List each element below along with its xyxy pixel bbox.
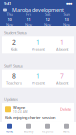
staticText: Kids (10, 47, 17, 52)
staticText: 1 (60, 38, 64, 47)
staticText: Nov (63, 22, 70, 27)
staticText: Updates (4, 97, 18, 102)
staticText: 1 (36, 71, 40, 80)
staticText: 12 (45, 17, 49, 22)
staticText: 8 (12, 71, 16, 80)
staticText: Activity (24, 130, 33, 133)
staticText: Present (31, 80, 44, 86)
button[interactable]: Menu (0, 8, 10, 11)
staticText: ●●● (66, 2, 72, 5)
staticText: Present (31, 47, 44, 52)
button[interactable]: Sat (38, 11, 57, 27)
staticText: Nov (6, 22, 13, 27)
staticText: Kids enjoying charter session (5, 115, 55, 120)
staticText: Fri (26, 11, 31, 17)
staticText: 11 (26, 17, 30, 22)
staticText: Reports (42, 130, 53, 133)
staticText: Absent (56, 47, 68, 52)
staticText: Sun (63, 11, 69, 17)
staticText: Staff Status (4, 63, 23, 69)
staticText: Thu (6, 11, 12, 17)
staticText: Nov (44, 22, 51, 27)
staticText: Home (5, 130, 13, 133)
staticText: 10:24 AM (13, 110, 27, 114)
staticText: 13 (64, 17, 68, 22)
staticText: Sat (45, 11, 50, 17)
staticText: Teachers (6, 80, 22, 86)
staticText: Wayne (13, 105, 25, 110)
button[interactable]: Fri (19, 11, 38, 27)
staticText: 7 (60, 71, 64, 80)
button[interactable]: Reports (38, 124, 57, 133)
staticText: Maroba development (12, 6, 64, 14)
staticText: 10 (7, 17, 11, 22)
button[interactable]: More (57, 124, 76, 133)
staticText: Student Status (4, 30, 27, 35)
button[interactable]: Delete (60, 107, 71, 112)
staticText: Delete (60, 107, 71, 112)
button[interactable]: Activity (19, 124, 38, 133)
button[interactable]: Thu (0, 11, 19, 27)
staticText: Nov (25, 22, 32, 27)
button[interactable]: Home (0, 124, 19, 133)
staticText: 1 (36, 38, 40, 47)
button[interactable]: Sun (57, 11, 76, 27)
staticText: More (63, 130, 70, 133)
staticText: 9:41 (4, 1, 11, 6)
staticText: Absent (56, 80, 68, 86)
staticText: 2 (12, 38, 16, 47)
